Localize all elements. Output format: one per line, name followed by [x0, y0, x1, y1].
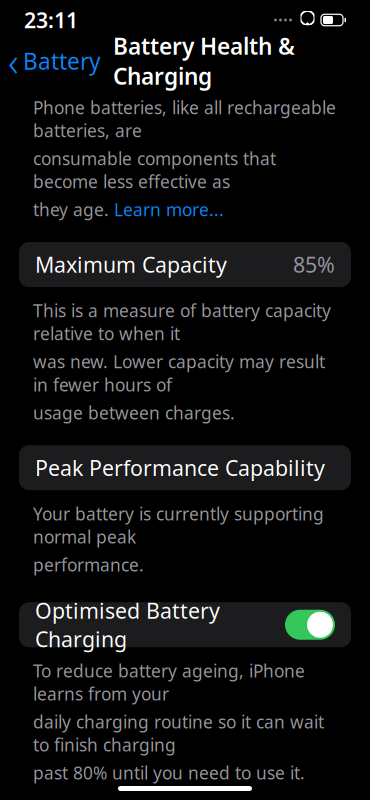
staticText: Phone batteries, like all rechargeable b…: [33, 96, 336, 142]
staticText: 85%: [293, 250, 335, 279]
staticText: was new. Lower capacity may result in fe…: [33, 350, 325, 396]
staticText: 23:11: [24, 6, 78, 34]
button[interactable]: Maximum Capacity: [19, 242, 351, 287]
button[interactable]: Learn more...: [114, 198, 224, 221]
staticText: Optimised Battery Charging: [35, 596, 220, 653]
staticText: Maximum Capacity: [35, 250, 227, 279]
staticText: Battery Health & Charging: [113, 31, 295, 91]
staticText: Learn more...: [114, 198, 224, 221]
staticText: past 80% until you need to use it.: [33, 761, 305, 784]
staticText: Your battery is currently supporting nor…: [33, 502, 324, 548]
button[interactable]: Back to Battery: [0, 30, 101, 91]
staticText: consumable components that become less e…: [33, 147, 276, 193]
button[interactable]: Peak Performance Capability: [19, 445, 351, 490]
staticText: This is a measure of battery capacity re…: [33, 299, 331, 345]
staticText: Peak Performance Capability: [35, 453, 325, 482]
staticText: usage between charges.: [33, 401, 235, 424]
button[interactable]: Optimised Battery Charging: [19, 602, 351, 647]
staticText: performance.: [33, 553, 144, 576]
staticText: ‹: [8, 34, 19, 87]
staticText: To reduce battery ageing, iPhone learns …: [33, 659, 305, 705]
staticText: daily charging routine so it can wait to…: [33, 710, 324, 756]
staticText: Battery: [23, 46, 101, 76]
staticText: they age.: [33, 198, 114, 221]
